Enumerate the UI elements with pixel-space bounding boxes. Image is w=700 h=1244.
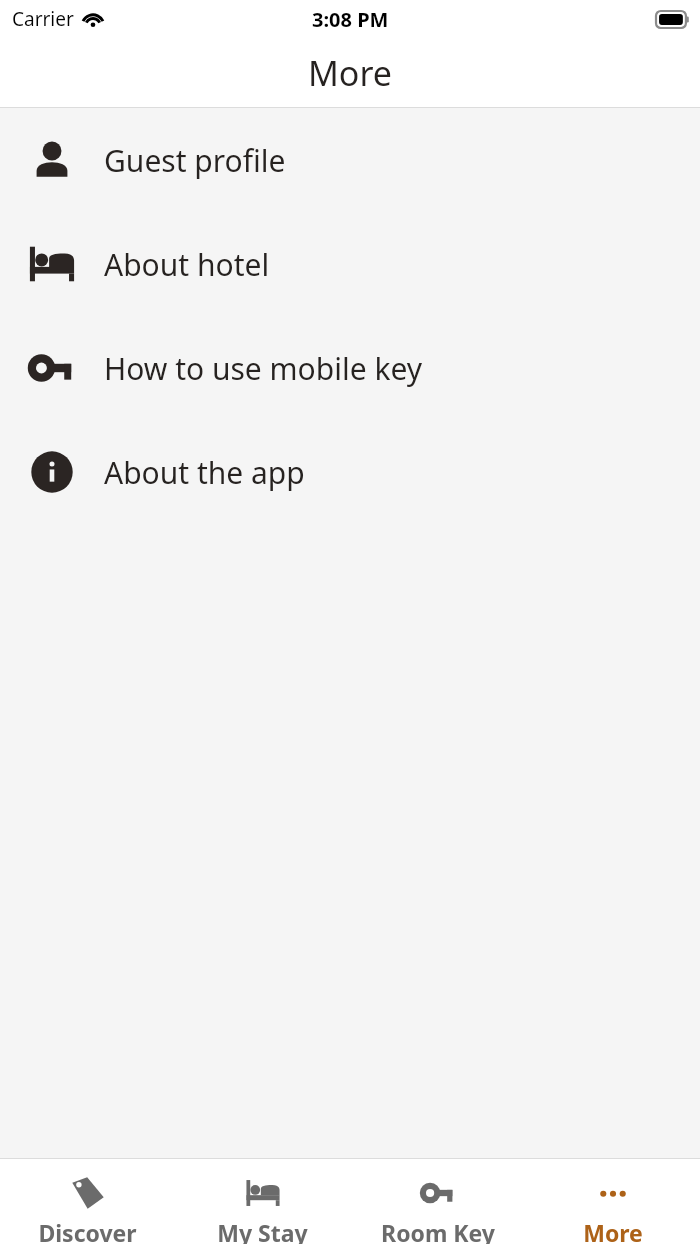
staticText: How to use mobile key bbox=[104, 348, 423, 389]
button[interactable]: How to use mobile key bbox=[0, 316, 700, 420]
staticText: About hotel bbox=[104, 244, 270, 285]
staticText: My Stay bbox=[217, 1217, 308, 1244]
button[interactable]: About hotel bbox=[0, 212, 700, 316]
staticText: Room Key bbox=[381, 1217, 495, 1244]
staticText: 3:08 PM bbox=[312, 6, 389, 33]
staticText: More bbox=[583, 1217, 643, 1244]
button[interactable]: Discover bbox=[0, 1159, 175, 1244]
button[interactable]: More bbox=[525, 1159, 700, 1244]
button[interactable]: My Stay bbox=[175, 1159, 350, 1244]
button[interactable]: Guest profile bbox=[0, 108, 700, 212]
button[interactable]: About the app bbox=[0, 420, 700, 524]
staticText: Guest profile bbox=[104, 140, 286, 181]
button[interactable]: Room Key bbox=[350, 1159, 525, 1244]
staticText: About the app bbox=[104, 452, 305, 493]
staticText: More bbox=[308, 50, 392, 96]
staticText: Carrier bbox=[12, 6, 74, 32]
staticText: Discover bbox=[38, 1217, 137, 1244]
